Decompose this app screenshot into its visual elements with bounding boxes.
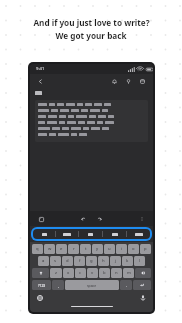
staticText: 9:41 xyxy=(36,66,45,72)
button[interactable] xyxy=(79,229,102,239)
button[interactable]: z xyxy=(50,268,62,278)
button[interactable]: t xyxy=(80,244,91,254)
staticText: k xyxy=(126,258,129,264)
button[interactable]: More options xyxy=(137,214,147,224)
button[interactable]: Archive xyxy=(137,76,148,87)
button[interactable] xyxy=(127,229,150,239)
button[interactable]: Shift xyxy=(32,268,49,278)
staticText: x xyxy=(67,270,70,276)
staticText: q xyxy=(36,246,39,252)
button[interactable] xyxy=(56,229,78,239)
button[interactable]: ?123 xyxy=(32,280,51,290)
button[interactable]: q xyxy=(32,244,43,254)
staticText: e xyxy=(60,246,63,252)
staticText: We got your back xyxy=(55,30,127,41)
button[interactable]: a xyxy=(38,256,49,266)
button[interactable]: b xyxy=(99,268,110,278)
button[interactable]: Back xyxy=(35,76,46,87)
staticText: And if you just love to write? xyxy=(33,17,150,28)
button[interactable]: o xyxy=(128,244,139,254)
staticText: w xyxy=(48,246,52,252)
staticText: f xyxy=(79,258,81,264)
button[interactable]: h xyxy=(98,256,109,266)
button[interactable]: r xyxy=(68,244,79,254)
button[interactable]: Undo xyxy=(78,214,88,224)
button[interactable]: . xyxy=(120,280,132,290)
staticText: o xyxy=(132,246,135,252)
button[interactable]: v xyxy=(87,268,98,278)
staticText: z xyxy=(55,270,57,276)
button[interactable]: c xyxy=(75,268,86,278)
staticText: v xyxy=(91,270,94,276)
button[interactable]: j xyxy=(110,256,121,266)
button[interactable]: Reminder xyxy=(109,76,120,87)
staticText: r xyxy=(73,246,75,252)
staticText: c xyxy=(79,270,82,276)
button[interactable] xyxy=(103,229,126,239)
button[interactable]: Space xyxy=(65,280,119,290)
button[interactable]: y xyxy=(92,244,103,254)
button[interactable]: i xyxy=(116,244,127,254)
button[interactable]: m xyxy=(123,268,134,278)
staticText: ?123 xyxy=(38,283,46,288)
staticText: space xyxy=(87,283,97,288)
button[interactable]: Voice input xyxy=(139,294,147,302)
staticText: b xyxy=(103,270,106,276)
button[interactable]: Backspace xyxy=(135,268,151,278)
staticText: d xyxy=(66,258,69,264)
staticText: h xyxy=(102,258,105,264)
staticText: , xyxy=(58,283,59,288)
button[interactable]: p xyxy=(140,244,151,254)
button[interactable]: f xyxy=(74,256,85,266)
staticText: p xyxy=(144,246,147,252)
staticText: i xyxy=(121,246,123,252)
button[interactable]: Change language xyxy=(36,294,44,302)
button[interactable]: u xyxy=(104,244,115,254)
button[interactable]: l xyxy=(134,256,145,266)
button[interactable]: , xyxy=(52,280,64,290)
button[interactable]: g xyxy=(86,256,97,266)
staticText: n xyxy=(115,270,118,276)
button[interactable]: Add image xyxy=(36,214,46,224)
button[interactable]: d xyxy=(62,256,73,266)
button[interactable]: Enter xyxy=(133,280,151,290)
staticText: m xyxy=(127,270,131,276)
staticText: t xyxy=(85,246,87,252)
staticText: a xyxy=(42,258,45,264)
button[interactable] xyxy=(33,229,55,239)
staticText: s xyxy=(54,258,57,264)
button[interactable]: Redo xyxy=(94,214,104,224)
staticText: g xyxy=(90,258,93,264)
button[interactable]: w xyxy=(44,244,55,254)
button[interactable]: e xyxy=(56,244,67,254)
staticText: l xyxy=(139,258,141,264)
button[interactable]: s xyxy=(50,256,61,266)
staticText: u xyxy=(108,246,111,252)
button[interactable]: n xyxy=(111,268,122,278)
button[interactable]: k xyxy=(122,256,133,266)
staticText: j xyxy=(115,258,117,264)
staticText: y xyxy=(96,246,99,252)
button[interactable]: x xyxy=(63,268,74,278)
button[interactable]: Pin xyxy=(123,76,134,87)
staticText: . xyxy=(126,283,127,288)
